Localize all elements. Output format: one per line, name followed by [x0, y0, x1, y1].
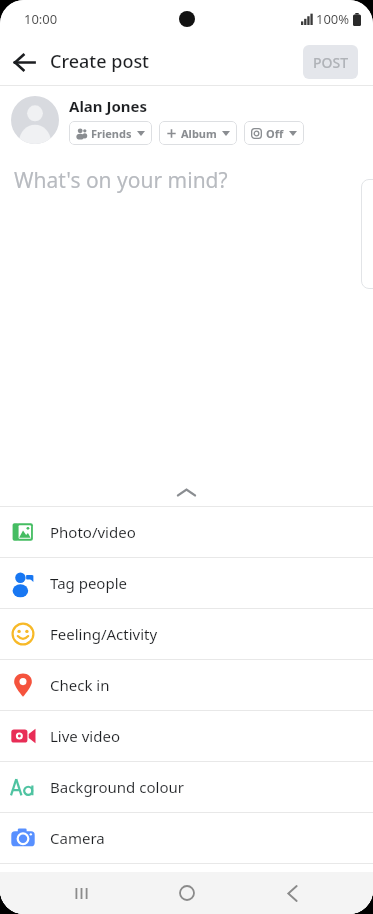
staticText: Friends: [91, 126, 132, 141]
button[interactable]: Album: [159, 121, 237, 145]
staticText: POST: [313, 53, 349, 72]
staticText: Live video: [50, 726, 120, 746]
button[interactable]: Off: [244, 121, 304, 145]
button[interactable]: Camera: [0, 813, 373, 863]
button[interactable]: Live video: [0, 711, 373, 761]
staticText: Album: [181, 126, 217, 141]
staticText: 100%: [316, 10, 350, 28]
button[interactable]: Home: [163, 872, 211, 914]
button[interactable]: Collapse: [0, 478, 373, 506]
staticText: 10:00: [24, 10, 58, 28]
button[interactable]: GIF: [0, 864, 373, 914]
staticText: Camera: [50, 828, 105, 848]
button[interactable]: Back: [8, 46, 40, 78]
staticText: Check in: [50, 675, 110, 695]
staticText: Tag people: [50, 573, 127, 593]
button[interactable]: Check in: [0, 660, 373, 710]
staticText: Photo/video: [50, 522, 136, 542]
button[interactable]: Friends: [69, 121, 152, 145]
staticText: Off: [266, 126, 284, 141]
button[interactable]: Photo/video: [0, 507, 373, 557]
button[interactable]: POST: [303, 45, 358, 79]
staticText: Create post: [50, 49, 150, 74]
button[interactable]: Background colour: [0, 762, 373, 812]
button[interactable]: Back: [268, 872, 316, 914]
staticText: Alan Jones: [69, 96, 148, 116]
staticText: Feeling/Activity: [50, 624, 158, 644]
button[interactable]: Feeling/Activity: [0, 609, 373, 659]
button[interactable]: Tag people: [0, 558, 373, 608]
staticText: What's on your mind?: [14, 166, 228, 195]
button[interactable]: Recents: [57, 872, 105, 914]
button[interactable]: Profile picture: [11, 96, 59, 144]
staticText: Background colour: [50, 777, 184, 797]
